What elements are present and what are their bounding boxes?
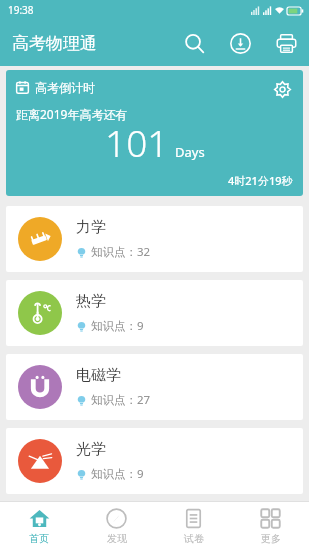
button[interactable]: 光学 [6,428,303,494]
staticText: 知识点：9 [91,466,144,482]
staticText: Days [175,143,205,161]
staticText: 电磁学 [76,366,121,385]
button[interactable]: 电磁学 [6,354,303,420]
button[interactable]: 高考倒计时 [6,70,303,196]
staticText: 发现 [107,532,127,545]
staticText: 知识点：27 [91,392,151,408]
button[interactable]: Download [217,20,263,66]
button[interactable]: Print [263,20,309,66]
button[interactable]: Search [171,20,217,66]
staticText: 力学 [76,218,106,237]
staticText: 101 [105,117,169,167]
button[interactable]: 试卷 [155,502,232,550]
button[interactable]: 热学 [6,280,303,346]
staticText: 距离2019年高考还有 [16,106,128,122]
staticText: 高考倒计时 [35,80,95,95]
staticText: 更多 [261,532,281,545]
button[interactable]: 力学 [6,206,303,272]
staticText: 知识点：32 [91,244,151,260]
button[interactable]: 首页 [0,502,78,550]
staticText: 首页 [29,532,49,545]
staticText: 知识点：9 [91,318,144,334]
staticText: 19:38 [8,3,34,17]
staticText: 高考物理通 [12,33,97,54]
staticText: 热学 [76,292,106,311]
staticText: 4时21分19秒 [228,173,293,188]
button[interactable]: 发现 [78,502,155,550]
staticText: 试卷 [184,532,204,545]
button[interactable]: 更多 [232,502,309,550]
staticText: 光学 [76,440,106,459]
button[interactable]: Settings [269,76,295,102]
